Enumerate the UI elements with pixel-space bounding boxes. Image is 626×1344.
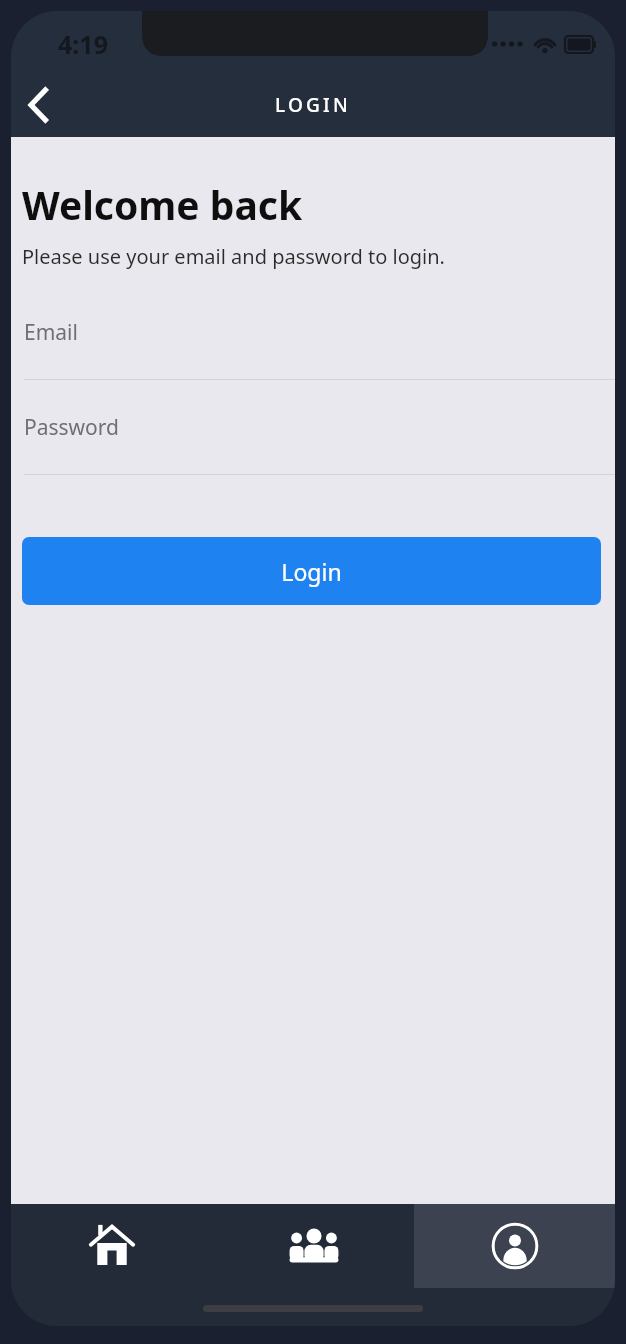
staticText: 4:19 — [58, 27, 108, 61]
button[interactable]: Email — [11, 315, 615, 379]
staticText: Welcome back — [22, 178, 303, 231]
button[interactable]: Back — [11, 77, 67, 133]
staticText: Please use your email and password to lo… — [22, 243, 445, 270]
staticText: LOGIN — [275, 92, 351, 118]
button[interactable]: People — [213, 1204, 414, 1288]
button[interactable]: Profile — [414, 1204, 615, 1288]
staticText: Login — [281, 556, 342, 587]
button[interactable]: Password — [11, 410, 615, 474]
staticText: Password — [24, 413, 119, 442]
button[interactable]: Home — [11, 1204, 213, 1288]
staticText: Email — [24, 318, 78, 347]
button[interactable]: Login — [22, 537, 601, 605]
